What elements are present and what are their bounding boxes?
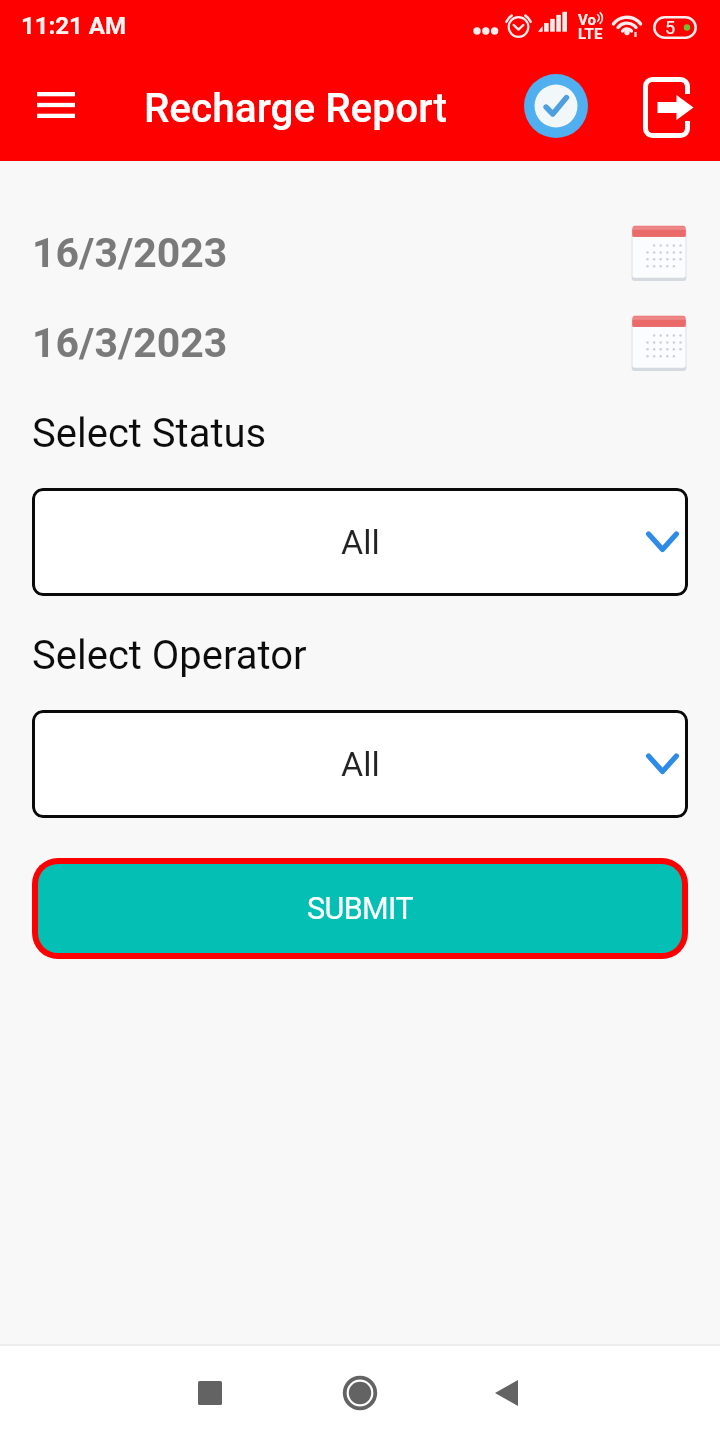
staticText: 11:21 AM [21, 12, 127, 40]
button[interactable]: All [32, 710, 688, 818]
staticText: Recharge Report [144, 84, 447, 131]
button[interactable]: Back [431, 1346, 581, 1440]
button[interactable]: 16/3/2023 [0, 315, 720, 371]
staticText: All [341, 522, 380, 562]
button[interactable]: Logout [634, 71, 706, 143]
button[interactable]: Open navigation menu [28, 77, 84, 133]
staticText: Vo [578, 11, 596, 29]
button[interactable]: 16/3/2023 [0, 225, 720, 281]
staticText: 5 [665, 17, 676, 38]
other: Pick date [631, 315, 687, 371]
staticText: Select Status [32, 410, 267, 457]
staticText: Select Operator [32, 632, 307, 679]
other: Pick date [631, 225, 687, 281]
button[interactable]: Recent apps [135, 1346, 285, 1440]
button[interactable]: Verified [520, 70, 592, 142]
staticText: 16/3/2023 [32, 319, 228, 367]
button[interactable]: SUBMIT [38, 864, 682, 953]
staticText: SUBMIT [307, 891, 413, 927]
staticText: LTE [578, 25, 603, 43]
staticText: 16/3/2023 [32, 229, 228, 277]
staticText: All [341, 744, 380, 784]
button[interactable]: All [32, 488, 688, 596]
button[interactable]: Home [285, 1346, 435, 1440]
